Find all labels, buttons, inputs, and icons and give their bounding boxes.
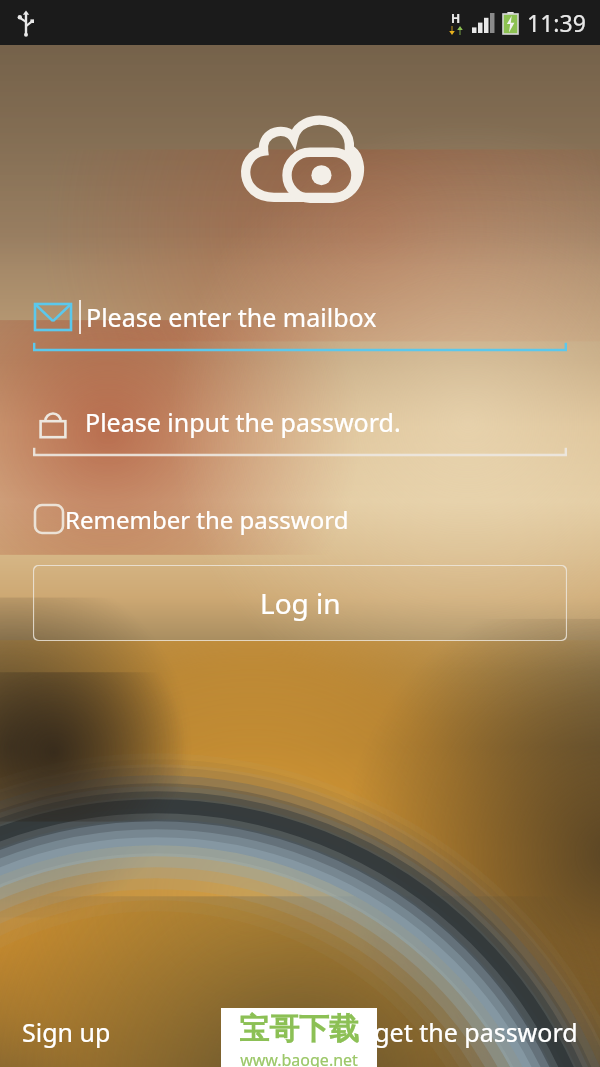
staticText: Please input the password. [85, 405, 401, 439]
staticText: Please enter the mailbox [86, 300, 377, 334]
staticText: Log in [260, 584, 341, 622]
staticText: Forget the password [336, 1015, 578, 1049]
staticText: www.baoge.net [240, 1049, 358, 1067]
button[interactable]: Forget the password [328, 1009, 586, 1055]
staticText: Remember the password [65, 503, 349, 536]
staticText: Sign up [22, 1015, 111, 1049]
staticText: 11:39 [527, 7, 586, 38]
staticText: 宝哥下载 [239, 1010, 359, 1048]
button[interactable]: Please enter the mailbox [33, 291, 567, 343]
button[interactable]: Log in [33, 565, 567, 641]
staticText: H [451, 10, 461, 26]
button[interactable]: Please input the password. [33, 396, 567, 448]
button[interactable]: Remember the password [33, 495, 349, 543]
button[interactable]: Sign up [14, 1009, 119, 1055]
